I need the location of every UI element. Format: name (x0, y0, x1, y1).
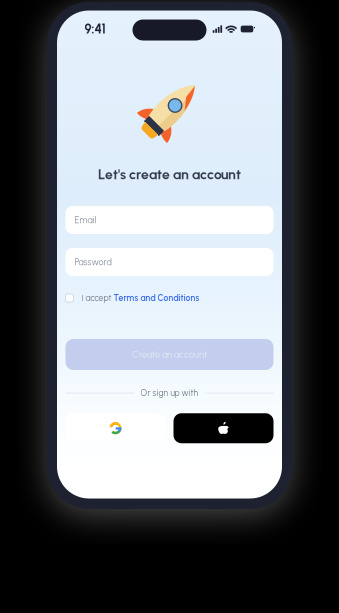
button[interactable]: Email (65, 206, 273, 234)
staticText: Or sign up with (140, 388, 198, 398)
staticText: Password (74, 257, 111, 267)
button[interactable]: Sign up with Apple (173, 413, 273, 443)
button[interactable]: Create an account (65, 304, 273, 370)
staticText: 9:41 (84, 21, 105, 37)
staticText: I accept (81, 293, 113, 303)
staticText: Terms and Conditions (113, 293, 199, 303)
staticText: Email (74, 215, 96, 225)
button[interactable]: Sign up with Google (65, 413, 165, 443)
staticText: Create an account (132, 349, 207, 360)
button[interactable]: Password (65, 248, 273, 276)
staticText: Let's create an account (98, 166, 241, 183)
button[interactable]: I accept (65, 276, 273, 304)
